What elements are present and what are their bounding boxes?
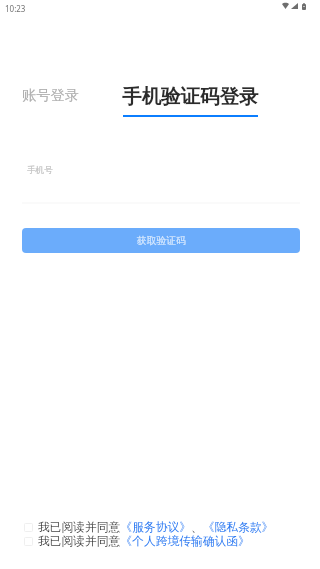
button[interactable]: 获取验证码 (22, 228, 300, 253)
staticText: 10:23 (5, 3, 26, 14)
staticText: 我已阅读并同意《服务协议》、《隐私条款》 (38, 520, 274, 534)
staticText: 账号登录 (22, 86, 80, 104)
staticText: 我已阅读并同意《个人跨境传输确认函》 (38, 534, 250, 548)
button[interactable]: 账号登录 (14, 79, 88, 111)
other: Wi-Fi signal (282, 3, 289, 9)
button[interactable]: Agree checkbox (24, 534, 250, 548)
other: Battery (302, 3, 306, 10)
staticText: 手机号 (27, 165, 53, 176)
button[interactable]: 手机号 (22, 152, 300, 204)
staticText: 获取验证码 (137, 235, 186, 247)
other: Agree checkbox (24, 523, 33, 532)
button[interactable]: 手机验证码登录 (114, 79, 267, 122)
button[interactable]: Agree checkbox (24, 520, 274, 534)
staticText: 手机验证码登录 (122, 84, 259, 109)
other: Agree checkbox (24, 537, 33, 546)
other: Cellular signal (291, 3, 298, 9)
